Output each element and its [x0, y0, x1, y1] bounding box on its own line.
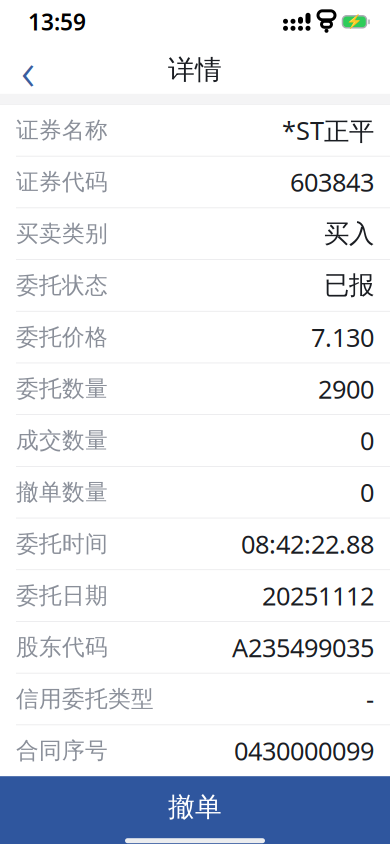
- staticText: 买入: [324, 218, 374, 249]
- staticText: 信用委托类型: [16, 685, 154, 713]
- staticText: 证券代码: [16, 168, 108, 196]
- button[interactable]: 返回: [6, 48, 50, 92]
- staticText: 603843: [290, 165, 374, 199]
- staticText: 委托数量: [16, 375, 108, 403]
- staticText: 委托日期: [16, 582, 108, 609]
- staticText: 0: [360, 424, 374, 457]
- staticText: 股东代码: [16, 633, 108, 661]
- staticText: 0430000099: [234, 734, 374, 767]
- staticText: ‹: [21, 34, 35, 105]
- staticText: 2900: [318, 372, 374, 406]
- staticText: *ST正平: [282, 113, 374, 147]
- staticText: 已报: [324, 270, 374, 301]
- button[interactable]: 撤单: [0, 776, 390, 844]
- staticText: 撤单数量: [16, 478, 108, 506]
- staticText: 买卖类别: [16, 220, 108, 248]
- staticText: -: [366, 682, 374, 716]
- staticText: 证券名称: [16, 116, 108, 144]
- staticText: 成交数量: [16, 427, 108, 454]
- staticText: 合同序号: [16, 737, 108, 765]
- staticText: 撤单: [168, 791, 222, 824]
- staticText: ⚡: [346, 14, 363, 29]
- staticText: A235499035: [232, 630, 374, 664]
- staticText: 13:59: [28, 7, 86, 37]
- staticText: 20251112: [262, 579, 374, 612]
- staticText: 详情: [168, 53, 222, 86]
- staticText: 委托价格: [16, 323, 108, 351]
- staticText: 0: [360, 475, 374, 509]
- staticText: 08:42:22.88: [241, 527, 374, 561]
- staticText: 委托时间: [16, 530, 108, 558]
- staticText: 委托状态: [16, 271, 108, 299]
- staticText: 7.130: [311, 320, 374, 354]
